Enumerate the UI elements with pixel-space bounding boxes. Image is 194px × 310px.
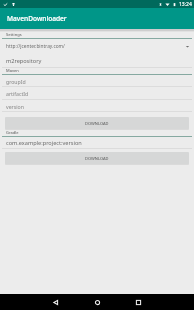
staticText: 13:24 xyxy=(179,1,192,8)
staticText: Maven xyxy=(6,68,19,73)
staticText: m2repository xyxy=(6,57,42,65)
staticText: DOWNLOAD xyxy=(85,156,109,161)
button[interactable]: Home xyxy=(87,296,107,308)
button[interactable]: DOWNLOAD xyxy=(5,117,189,129)
staticText: Settings xyxy=(6,32,22,37)
staticText: DOWNLOAD xyxy=(85,121,109,126)
button[interactable]: m2repository xyxy=(0,53,194,68)
button[interactable]: com.example:project:version xyxy=(0,137,194,149)
button[interactable]: version xyxy=(0,100,194,112)
button[interactable]: artifactId xyxy=(0,87,194,100)
button[interactable]: DOWNLOAD xyxy=(5,152,189,164)
staticText: artifactId xyxy=(6,90,29,97)
staticText: Gradle xyxy=(6,130,19,135)
staticText: MavenDownloader xyxy=(7,14,67,23)
button[interactable]: groupId xyxy=(0,75,194,87)
button[interactable]: Recents xyxy=(128,296,148,308)
staticText: groupId xyxy=(6,78,26,85)
staticText: http://jcenter.bintray.com/ xyxy=(6,43,65,50)
staticText: version xyxy=(6,103,24,110)
button[interactable]: Back xyxy=(45,296,65,308)
button[interactable]: http://jcenter.bintray.com/ xyxy=(0,39,194,53)
staticText: com.example:project:version xyxy=(6,139,82,147)
